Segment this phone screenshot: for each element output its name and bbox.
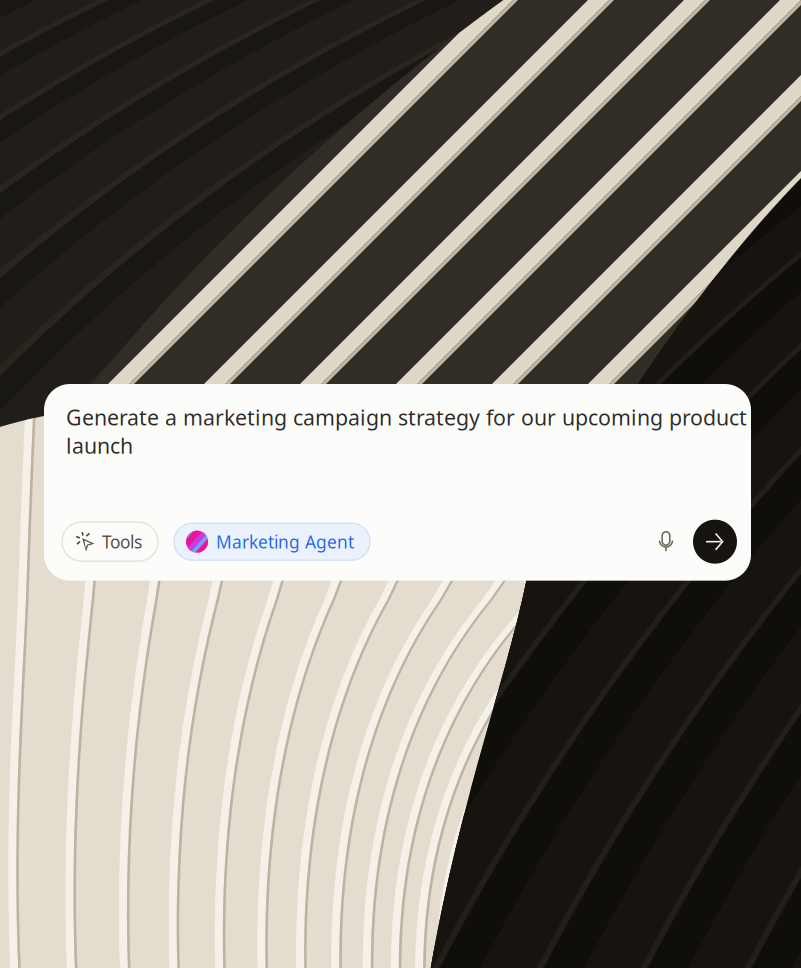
staticText: Tools — [102, 530, 142, 553]
button[interactable]: Voice input — [649, 524, 683, 559]
button[interactable]: Tools — [62, 522, 158, 561]
staticText: Marketing Agent — [216, 530, 354, 553]
button[interactable]: Marketing Agent — [174, 523, 370, 560]
staticText: Generate a marketing campaign strategy f… — [66, 403, 747, 460]
button[interactable]: Send — [693, 520, 737, 564]
